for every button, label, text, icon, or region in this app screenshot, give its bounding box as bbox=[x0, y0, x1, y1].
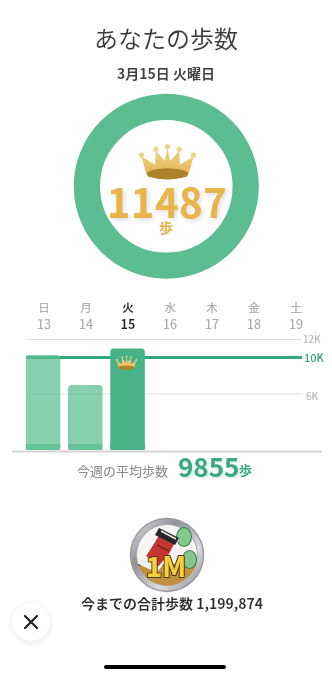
staticText: 歩 bbox=[0, 217, 332, 237]
staticText: 13 bbox=[23, 314, 65, 332]
staticText: 12K bbox=[303, 331, 321, 345]
staticText: 17 bbox=[191, 314, 233, 332]
staticText: 10K bbox=[304, 349, 324, 365]
staticText: 14 bbox=[65, 314, 107, 332]
staticText: 3月15日 火曜日 bbox=[0, 63, 332, 83]
staticText: あなたの歩数 bbox=[0, 20, 332, 55]
staticText: 金 bbox=[233, 299, 275, 316]
staticText: 今までの合計歩数 1,199,874 bbox=[6, 593, 332, 613]
staticText: 火 bbox=[107, 299, 149, 316]
staticText: 16 bbox=[149, 314, 191, 332]
staticText: 月 bbox=[65, 299, 107, 316]
button[interactable] bbox=[12, 603, 50, 641]
staticText: 今週の平均歩数 bbox=[77, 461, 169, 480]
staticText: 6K bbox=[306, 388, 319, 402]
staticText: 1M bbox=[0, 544, 331, 585]
staticText: 1M bbox=[1, 546, 332, 587]
staticText: 木 bbox=[191, 299, 233, 316]
staticText: 18 bbox=[233, 314, 275, 332]
staticText: 歩 bbox=[239, 460, 253, 479]
staticText: 11487 bbox=[1, 172, 332, 230]
staticText: 15 bbox=[107, 314, 149, 332]
staticText: 水 bbox=[149, 299, 191, 316]
staticText: 1M bbox=[0, 545, 332, 586]
staticText: 日 bbox=[23, 299, 65, 316]
staticText: 9855 bbox=[178, 447, 240, 485]
staticText: 19 bbox=[275, 314, 317, 332]
staticText: 1M bbox=[0, 546, 331, 587]
staticText: 土 bbox=[275, 299, 317, 316]
staticText: 1M bbox=[1, 544, 332, 585]
